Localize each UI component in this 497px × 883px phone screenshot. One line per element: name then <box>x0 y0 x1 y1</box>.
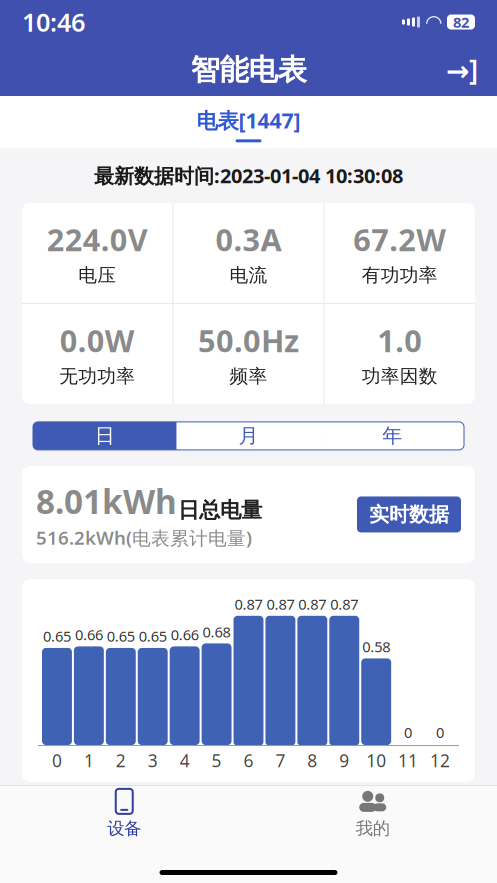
staticText: 频率 <box>229 365 267 388</box>
staticText: 0.65 <box>43 626 71 646</box>
staticText: 设备 <box>107 818 141 839</box>
staticText: 6 <box>243 749 253 772</box>
staticText: 0.65 <box>139 626 167 646</box>
staticText: →] <box>446 51 478 89</box>
staticText: 50.0Hz <box>198 320 299 361</box>
button[interactable]: 我的 <box>248 786 497 842</box>
staticText: 月 <box>238 424 258 448</box>
staticText: 224.0V <box>47 219 148 260</box>
staticText: 最新数据时间:2023-01-04 10:30:08 <box>94 162 403 189</box>
staticText: 电压 <box>78 264 116 287</box>
staticText: 2 <box>116 749 126 772</box>
button[interactable]: 日 <box>33 422 177 450</box>
staticText: 0 <box>52 749 62 772</box>
staticText: 0.3A <box>215 219 281 260</box>
staticText: 4 <box>180 749 190 772</box>
staticText: 10 <box>366 749 386 772</box>
button[interactable]: 实时数据 <box>357 496 461 532</box>
staticText: 年 <box>382 424 402 448</box>
staticText: 0.87 <box>234 594 262 614</box>
staticText: 82 <box>453 12 469 32</box>
staticText: 日总电量 <box>178 497 262 523</box>
staticText: 516.2kWh(电表累计电量) <box>36 525 252 550</box>
staticText: 我的 <box>356 818 390 839</box>
staticText: 日 <box>95 424 115 448</box>
staticText: 实时数据 <box>369 502 449 527</box>
staticText: 0.66 <box>75 625 103 644</box>
staticText: 0 <box>404 723 412 742</box>
staticText: 9 <box>339 749 349 772</box>
button[interactable]: 月 <box>177 422 320 450</box>
staticText: 0.87 <box>330 594 358 614</box>
staticText: 电表[1447] <box>196 106 300 134</box>
staticText: 3 <box>148 749 158 772</box>
staticText: 1 <box>84 749 94 772</box>
staticText: 无功功率 <box>59 365 135 388</box>
staticText: 0.58 <box>362 637 390 656</box>
staticText: 12 <box>430 749 450 772</box>
staticText: 7 <box>275 749 285 772</box>
staticText: 10:46 <box>22 5 85 39</box>
staticText: 电流 <box>229 264 267 287</box>
staticText: 0.68 <box>203 622 231 641</box>
button[interactable]: Log out <box>439 48 485 92</box>
staticText: 0.87 <box>266 594 294 614</box>
staticText: 功率因数 <box>362 365 438 388</box>
staticText: 0.65 <box>107 626 135 646</box>
staticText: 1.0 <box>377 320 422 361</box>
staticText: 8 <box>307 749 317 772</box>
staticText: 67.2W <box>353 219 446 260</box>
staticText: 有功功率 <box>362 264 438 287</box>
staticText: 智能电表 <box>190 52 306 88</box>
staticText: 5 <box>212 749 222 772</box>
staticText: ◠ <box>426 11 441 33</box>
staticText: 0.66 <box>171 625 199 644</box>
staticText: 11 <box>398 749 418 772</box>
staticText: 8.01kWh <box>36 479 177 523</box>
button[interactable]: 电表[1447] <box>0 96 497 148</box>
button[interactable]: 年 <box>320 422 464 450</box>
staticText: 0.0W <box>60 320 135 361</box>
staticText: 0 <box>436 723 444 742</box>
staticText: 0.87 <box>298 594 326 614</box>
button[interactable]: 设备 <box>0 786 248 842</box>
